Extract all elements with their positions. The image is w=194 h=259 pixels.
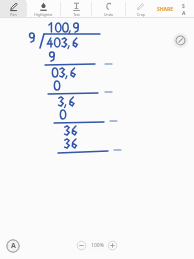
button[interactable]: Zoom out — [76, 240, 87, 251]
button[interactable]: SAVE — [179, 0, 189, 18]
button[interactable]: Undo — [92, 0, 125, 18]
button[interactable]: Zoom in — [107, 240, 118, 251]
staticText: 100% — [91, 242, 104, 249]
staticText: Undo — [104, 12, 113, 17]
staticText: Pen — [10, 12, 17, 17]
button[interactable]: Crop — [126, 0, 154, 18]
staticText: Highlighter — [34, 12, 53, 17]
staticText: A — [11, 241, 16, 251]
staticText: SAVE — [182, 3, 186, 15]
button[interactable]: Account — [6, 239, 20, 253]
staticText: Text — [73, 12, 80, 17]
button[interactable]: Pen — [0, 0, 26, 18]
button[interactable]: Text — [61, 0, 91, 18]
staticText: Crop — [137, 12, 145, 17]
button[interactable]: Eraser — [173, 33, 188, 48]
staticText: SHARE — [157, 6, 174, 13]
button[interactable]: 100% — [87, 240, 107, 251]
button[interactable]: Highlighter — [27, 0, 60, 18]
button[interactable]: SHARE — [154, 3, 177, 16]
